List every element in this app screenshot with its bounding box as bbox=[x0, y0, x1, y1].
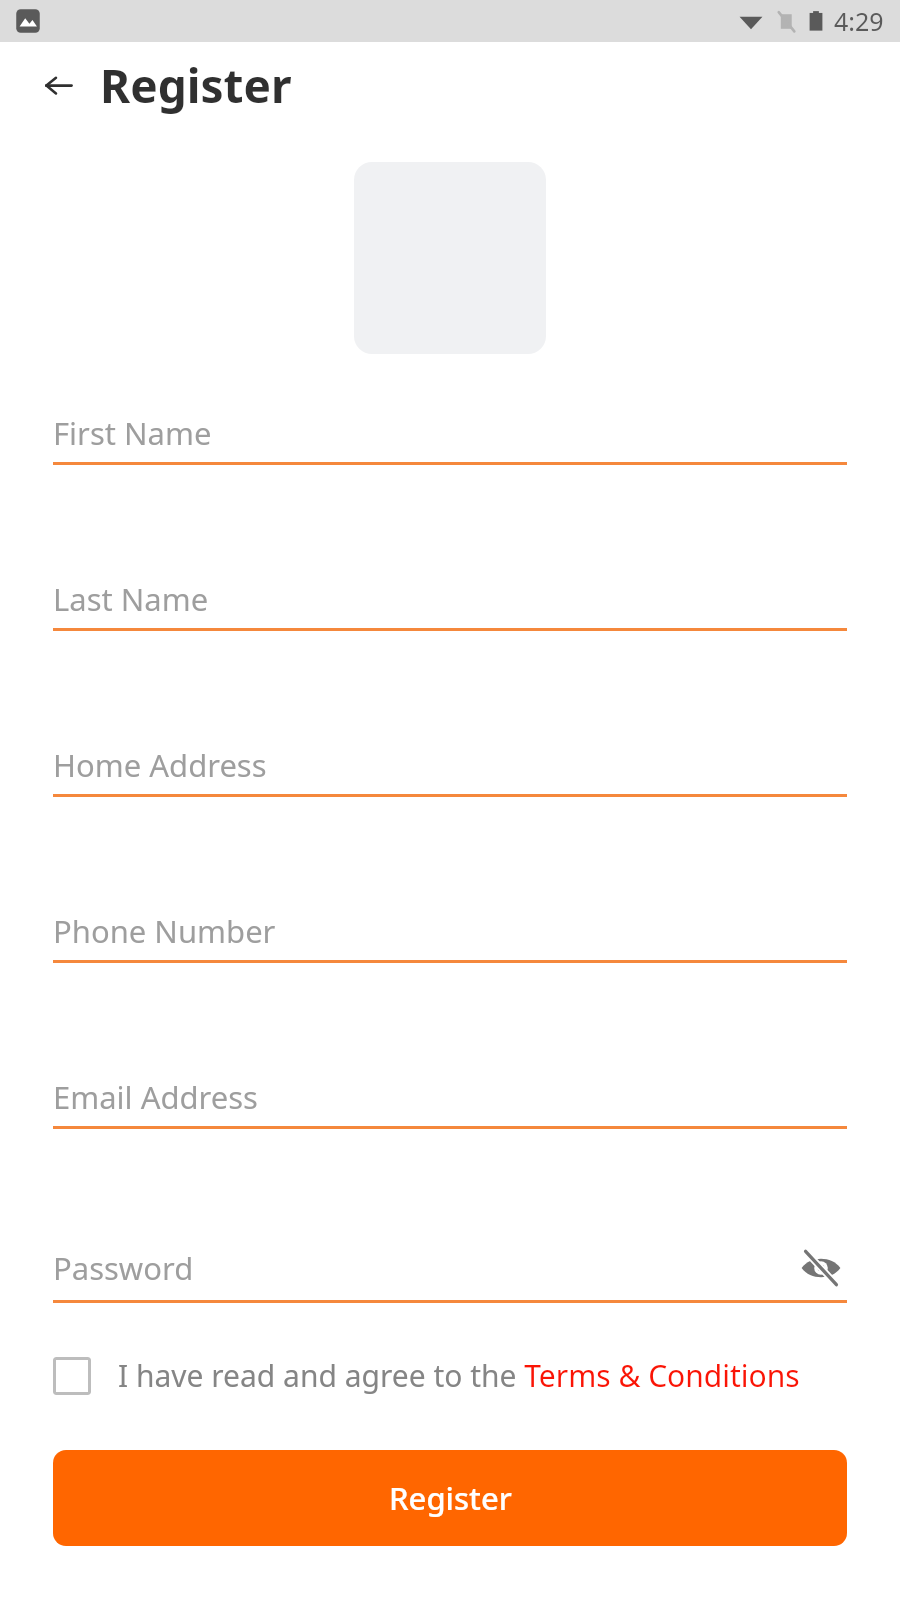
staticText: Home Address bbox=[53, 744, 267, 786]
staticText: 4:29 bbox=[834, 4, 884, 38]
button[interactable]: Back bbox=[36, 62, 82, 108]
staticText: Register bbox=[100, 54, 292, 117]
button[interactable]: Register bbox=[53, 1450, 847, 1546]
button[interactable]: Show password bbox=[795, 1242, 847, 1294]
button[interactable]: Agree to terms checkbox bbox=[53, 1357, 91, 1395]
button[interactable]: Password bbox=[53, 1242, 847, 1303]
staticText: First Name bbox=[53, 412, 212, 454]
staticText: I have read and agree to the Terms & Con… bbox=[118, 1355, 800, 1396]
button[interactable]: First Name bbox=[53, 412, 847, 465]
staticText: Last Name bbox=[53, 578, 209, 620]
button[interactable]: Last Name bbox=[53, 578, 847, 631]
staticText: Phone Number bbox=[53, 910, 276, 952]
button[interactable]: Agree to terms checkbox bbox=[53, 1355, 847, 1396]
staticText: Register bbox=[389, 1477, 512, 1519]
button[interactable]: Phone Number bbox=[53, 910, 847, 963]
button[interactable]: Email Address bbox=[53, 1076, 847, 1129]
button[interactable]: Home Address bbox=[53, 744, 847, 797]
staticText: Email Address bbox=[53, 1076, 258, 1118]
staticText: Password bbox=[53, 1247, 795, 1289]
